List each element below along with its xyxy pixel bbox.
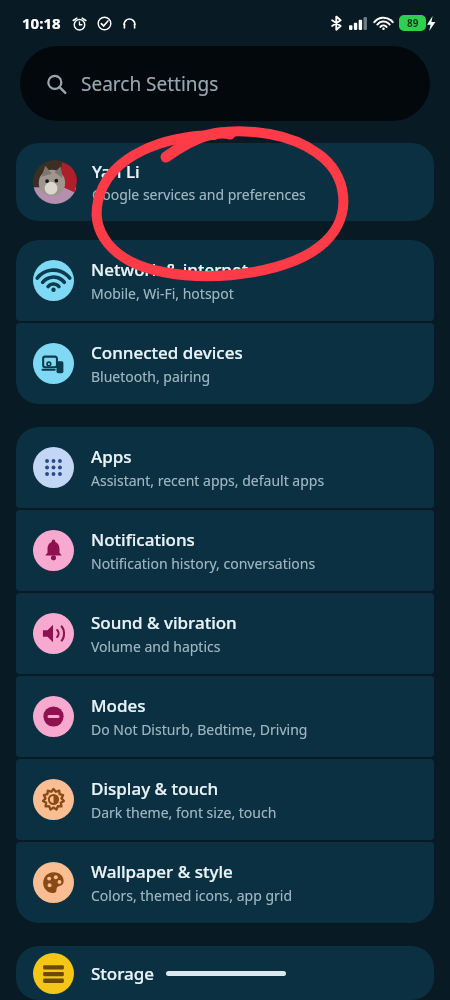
- staticText: Apps: [91, 445, 132, 468]
- staticText: Wallpaper & style: [91, 860, 233, 883]
- button[interactable]: Modes: [16, 676, 434, 757]
- staticText: Assistant, recent apps, default apps: [91, 471, 325, 490]
- staticText: Colors, themed icons, app grid: [91, 886, 292, 905]
- button[interactable]: Apps: [16, 427, 434, 508]
- button[interactable]: Wallpaper & style: [16, 842, 434, 923]
- staticText: Notifications: [91, 528, 195, 551]
- button[interactable]: Sound & vibration: [16, 593, 434, 674]
- button[interactable]: Display & touch: [16, 759, 434, 840]
- staticText: Do Not Disturb, Bedtime, Driving: [91, 720, 308, 739]
- other: Search: [46, 74, 67, 95]
- button[interactable]: Connected devices: [16, 323, 434, 404]
- button[interactable]: Network & internet: [16, 240, 434, 321]
- button[interactable]: Notifications: [16, 510, 434, 591]
- staticText: Volume and haptics: [91, 637, 221, 656]
- staticText: Google services and preferences: [92, 185, 306, 204]
- staticText: 89: [407, 16, 419, 30]
- staticText: Sound & vibration: [91, 611, 237, 634]
- staticText: Mobile, Wi-Fi, hotspot: [91, 284, 234, 303]
- staticText: 10:18: [22, 13, 61, 33]
- staticText: Display & touch: [91, 777, 219, 800]
- staticText: Network & internet: [91, 258, 249, 281]
- staticText: Bluetooth, pairing: [91, 367, 211, 386]
- button[interactable]: Storage: [16, 946, 434, 1000]
- staticText: Dark theme, font size, touch: [91, 803, 277, 822]
- staticText: Notification history, conversations: [91, 554, 316, 573]
- button[interactable]: Search: [20, 46, 430, 121]
- staticText: Yan Li: [92, 160, 140, 183]
- button[interactable]: Yan Li: [16, 143, 434, 221]
- staticText: Connected devices: [91, 341, 243, 364]
- staticText: Search Settings: [81, 71, 219, 97]
- staticText: Modes: [91, 694, 146, 717]
- staticText: Storage: [91, 962, 155, 985]
